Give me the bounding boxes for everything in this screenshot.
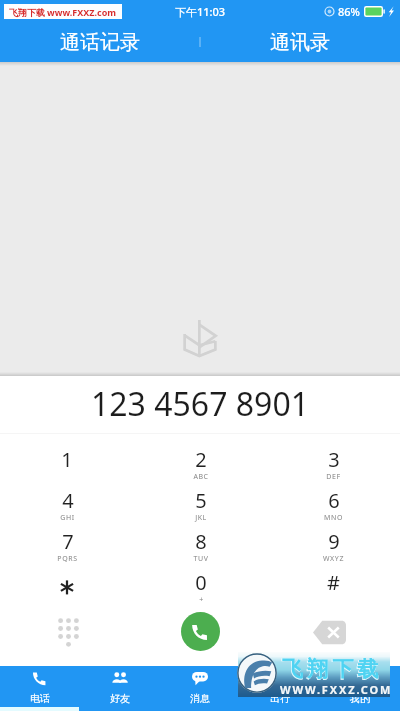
button[interactable]: 0 [134, 557, 267, 598]
staticText: 电话 [30, 692, 50, 705]
staticText: 2 [195, 446, 207, 473]
staticText: + [199, 595, 204, 605]
button[interactable]: Call [134, 598, 267, 666]
staticText: 8 [195, 528, 207, 555]
staticText: 飞翔下载 [281, 656, 382, 684]
button[interactable]: 好友 [80, 666, 160, 711]
staticText: MNO [324, 513, 343, 523]
staticText: 飞翔下载 [282, 656, 383, 682]
button[interactable]: 消息 [160, 666, 240, 711]
button[interactable] [0, 557, 134, 598]
staticText: 通讯录 [270, 30, 330, 55]
staticText: PQRS [57, 554, 78, 564]
staticText: 3 [328, 446, 340, 473]
staticText: 5 [195, 487, 207, 514]
staticText: WWW.FXXZ.COM [280, 682, 393, 697]
staticText: www.FXXZ.com [47, 6, 117, 18]
button[interactable]: 8 [134, 516, 267, 557]
staticText: 通话记录 [60, 30, 140, 55]
button[interactable]: 通话记录 [0, 22, 200, 62]
staticText: 好友 [110, 692, 130, 705]
staticText: WXYZ [323, 554, 344, 564]
button[interactable]: Backspace [267, 598, 400, 666]
staticText: GHI [60, 513, 75, 523]
staticText: 9 [328, 528, 340, 555]
button[interactable]: 5 [134, 475, 267, 516]
staticText: 7 [62, 528, 74, 555]
staticText: JKL [195, 513, 207, 523]
button[interactable]: 通讯录 [200, 22, 400, 62]
staticText: 4 [62, 487, 74, 514]
staticText: # [327, 569, 340, 596]
staticText: 飞翔下载 [9, 7, 45, 18]
staticText: 出行 [270, 692, 290, 705]
button[interactable]: 1 [0, 434, 134, 475]
staticText: 6 [328, 487, 340, 514]
staticText: 下午11:03 [175, 4, 226, 19]
staticText: 123 4567 8901 [91, 382, 309, 426]
button[interactable]: 电话 [0, 666, 80, 711]
staticText: 0 [195, 569, 207, 596]
button[interactable]: 7 [0, 516, 134, 557]
staticText: 1 [61, 446, 73, 473]
staticText: DEF [326, 472, 341, 482]
button[interactable]: 4 [0, 475, 134, 516]
button[interactable]: 6 [267, 475, 400, 516]
button[interactable]: 我的 [320, 666, 400, 711]
staticText: 86% [338, 4, 360, 19]
staticText: 消息 [190, 692, 210, 705]
button[interactable]: 2 [134, 434, 267, 475]
staticText: ABC [193, 472, 209, 482]
staticText: TUV [193, 554, 209, 564]
button[interactable]: Dialpad [0, 598, 134, 666]
button[interactable]: 3 [267, 434, 400, 475]
staticText: 我的 [350, 692, 370, 705]
button[interactable]: 出行 [240, 666, 320, 711]
button[interactable]: 9 [267, 516, 400, 557]
button[interactable]: # [267, 557, 400, 598]
